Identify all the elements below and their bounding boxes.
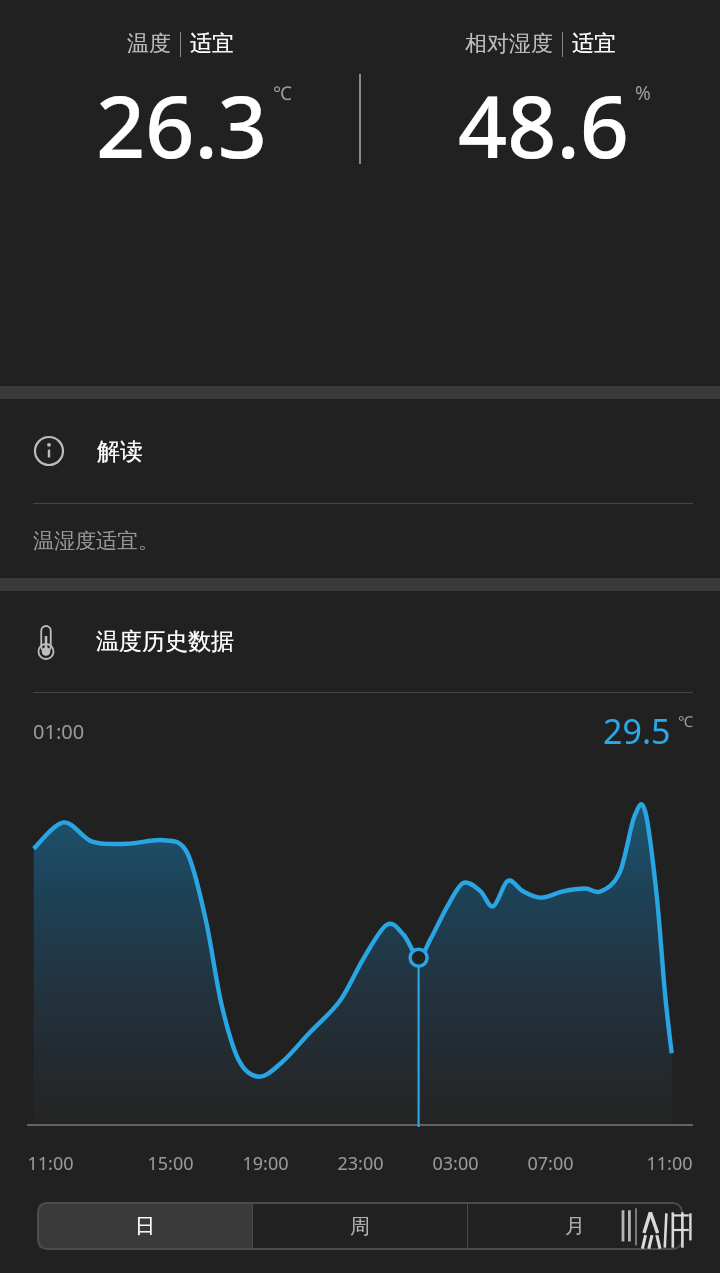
staticText: 48.6 bbox=[458, 66, 629, 183]
staticText: 月 bbox=[565, 1214, 585, 1239]
staticText: 03:00 bbox=[432, 1151, 479, 1176]
staticText: ℃ bbox=[678, 711, 693, 731]
staticText: 23:00 bbox=[337, 1151, 384, 1176]
staticText: 周 bbox=[350, 1214, 370, 1239]
button[interactable]: 周 bbox=[253, 1203, 467, 1249]
staticText: 11:00 bbox=[27, 1151, 74, 1176]
staticText: 相对湿度 bbox=[465, 30, 553, 58]
staticText: 适宜 bbox=[190, 30, 234, 58]
button[interactable]: Temperature bbox=[0, 591, 720, 692]
staticText: 日 bbox=[135, 1214, 155, 1239]
staticText: 温度 bbox=[127, 30, 171, 58]
staticText: 15:00 bbox=[147, 1151, 194, 1176]
staticText: 01:00 bbox=[33, 718, 85, 745]
staticText: 19:00 bbox=[242, 1151, 289, 1176]
button[interactable]: Info bbox=[0, 399, 720, 503]
button[interactable]: 月 bbox=[468, 1203, 682, 1249]
staticText: 适宜 bbox=[572, 30, 616, 58]
other: Temperature bbox=[33, 623, 59, 661]
staticText: 26.3 bbox=[96, 66, 267, 183]
staticText: 解读 bbox=[97, 437, 143, 466]
staticText: ℃ bbox=[273, 80, 292, 106]
staticText: 07:00 bbox=[527, 1151, 574, 1176]
button[interactable]: 日 bbox=[38, 1203, 252, 1249]
other: Info bbox=[33, 435, 65, 467]
staticText: 温湿度适宜。 bbox=[33, 528, 159, 554]
staticText: 温度历史数据 bbox=[96, 627, 234, 656]
staticText: 29.5 bbox=[603, 708, 671, 754]
staticText: % bbox=[635, 80, 651, 106]
staticText: 11:00 bbox=[646, 1151, 693, 1176]
